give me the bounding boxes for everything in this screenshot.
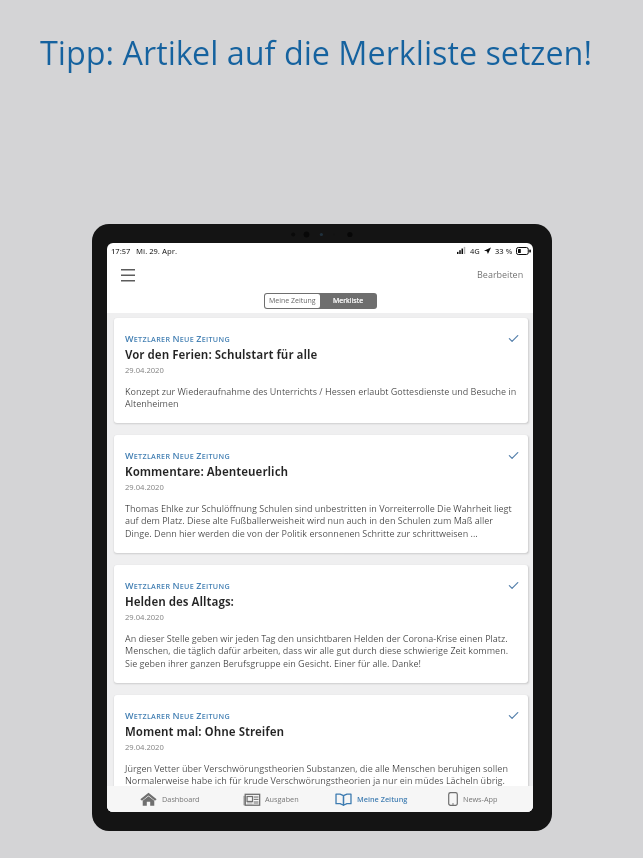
staticText: Konzept zur Wiederaufnahme des Unterrich… [125, 385, 519, 410]
staticText: Merkliste [333, 296, 364, 306]
staticText: Dashboard [162, 794, 200, 804]
staticText: Tipp: Artikel auf die Merkliste setzen! [40, 30, 593, 74]
staticText: WETZLARER NEUE ZEITUNG [125, 332, 230, 344]
staticText: Jürgen Vetter über Verschwörungstheorien… [125, 762, 519, 787]
staticText: 29.04.2020 [125, 365, 164, 375]
staticText: WETZLARER NEUE ZEITUNG [125, 579, 230, 591]
staticText: 29.04.2020 [125, 482, 164, 492]
button[interactable]: WETZLARER NEUE ZEITUNG [114, 565, 528, 683]
button[interactable]: Merkliste [320, 294, 376, 308]
button[interactable]: Menu [115, 262, 141, 286]
staticText: Ausgaben [265, 794, 299, 804]
button[interactable]: WETZLARER NEUE ZEITUNG [114, 318, 528, 423]
staticText: Meine Zeitung [357, 794, 408, 804]
staticText: WETZLARER NEUE ZEITUNG [125, 449, 230, 461]
staticText: 29.04.2020 [125, 612, 164, 622]
button[interactable]: Bearbeiten [472, 263, 529, 285]
button[interactable]: WETZLARER NEUE ZEITUNG [114, 695, 528, 800]
button[interactable]: Ausgaben [220, 786, 321, 812]
button[interactable]: Meine Zeitung [265, 294, 320, 308]
staticText: Vor den Ferien: Schulstart für alle [125, 347, 318, 363]
staticText: Bearbeiten [477, 268, 524, 280]
staticText: Kommentare: Abenteuerlich [125, 464, 289, 480]
staticText: Helden des Alltags: [125, 594, 234, 610]
staticText: 17:57 [111, 246, 131, 256]
button[interactable]: News-App [422, 786, 523, 812]
staticText: Meine Zeitung [269, 296, 316, 306]
button[interactable]: Meine Zeitung [321, 786, 422, 812]
staticText: WETZLARER NEUE ZEITUNG [125, 709, 230, 721]
staticText: Moment mal: Ohne Streifen [125, 724, 285, 740]
staticText: Thomas Ehlke zur Schulöffnung Schulen si… [125, 502, 519, 540]
staticText: 29.04.2020 [125, 742, 164, 752]
button[interactable]: WETZLARER NEUE ZEITUNG [114, 435, 528, 553]
staticText: 33 % [495, 246, 513, 256]
staticText: An dieser Stelle geben wir jeden Tag den… [125, 632, 519, 670]
staticText: 4G [470, 246, 480, 256]
staticText: Mi. 29. Apr. [136, 246, 178, 256]
staticText: News-App [463, 794, 498, 804]
button[interactable]: Dashboard [120, 786, 220, 812]
